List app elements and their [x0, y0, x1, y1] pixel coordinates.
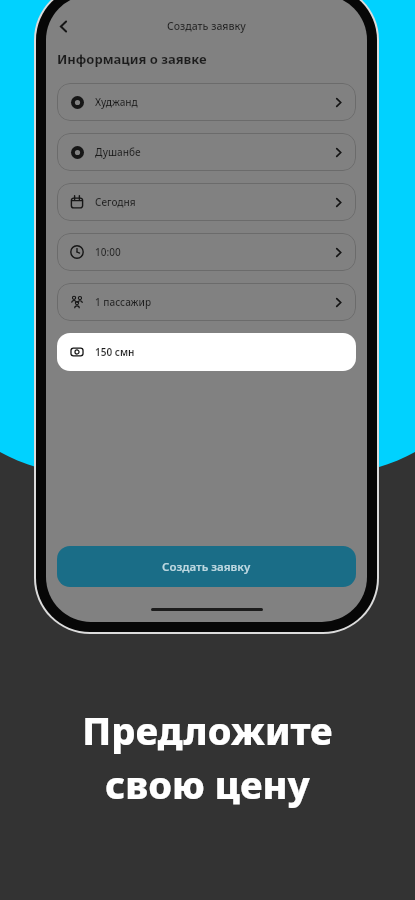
staticText: 150 смн [95, 345, 135, 359]
button[interactable]: Создать заявку [57, 546, 356, 587]
staticText: свою цену [105, 758, 310, 810]
staticText: Создать заявку [162, 559, 251, 575]
button[interactable]: 150 смн [57, 333, 356, 371]
button[interactable]: Душанбе [57, 133, 356, 171]
staticText: Предложите [82, 704, 333, 756]
staticText: Создать заявку [167, 19, 246, 33]
button[interactable]: 10:00 [57, 233, 356, 271]
button[interactable]: 1 пассажир [57, 283, 356, 321]
staticText: Душанбе [95, 145, 141, 159]
button[interactable]: Худжанд [57, 83, 356, 121]
button[interactable]: Сегодня [57, 183, 356, 221]
staticText: Сегодня [95, 195, 136, 209]
staticText: 10:00 [95, 245, 121, 259]
button[interactable]: Назад [49, 12, 77, 40]
staticText: Информация о заявке [57, 50, 207, 68]
staticText: Худжанд [95, 95, 138, 109]
staticText: 1 пассажир [95, 295, 152, 309]
